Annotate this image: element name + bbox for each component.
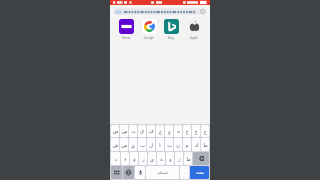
button[interactable]: ط [201, 138, 209, 151]
staticText: ظ [186, 156, 191, 162]
button[interactable]: Voice input [135, 166, 145, 179]
staticText: ش [112, 142, 119, 148]
button[interactable]: ف [147, 125, 155, 137]
button[interactable]: م [183, 138, 191, 151]
button[interactable]: و [166, 152, 174, 165]
button[interactable]: ض [111, 125, 119, 137]
staticText: و [169, 156, 172, 162]
staticText: ق [140, 128, 144, 134]
staticText: ا [159, 142, 161, 148]
button[interactable]: ا [156, 138, 164, 151]
button[interactable]: ك [192, 138, 200, 151]
button[interactable]: Address bar [113, 8, 207, 15]
button[interactable]: مسافة [146, 166, 179, 179]
staticText: ط [203, 142, 208, 148]
button[interactable]: Bing [161, 17, 181, 40]
staticText: ص [121, 128, 128, 134]
button[interactable]: غ [156, 125, 164, 137]
staticText: ك [194, 142, 199, 148]
button[interactable]: بحث [190, 166, 209, 179]
button[interactable]: ز [175, 152, 183, 165]
button[interactable]: Backspace [193, 152, 209, 165]
staticText: ل [149, 142, 153, 148]
button[interactable]: ب [138, 138, 146, 151]
staticText: ت [167, 142, 172, 148]
staticText: Yahoo [116, 36, 136, 40]
button[interactable]: ح [192, 125, 200, 137]
button[interactable]: ث [129, 125, 137, 137]
button[interactable]: ت [165, 138, 173, 151]
button[interactable]: ي [129, 138, 137, 151]
button[interactable]: ق [138, 125, 146, 137]
button[interactable]: ل [147, 138, 155, 151]
staticText: خ [185, 128, 189, 134]
staticText: ن [176, 142, 180, 148]
button[interactable]: Numbers [111, 166, 122, 179]
button[interactable]: ر [139, 152, 147, 165]
staticText: Apple [184, 36, 204, 40]
button[interactable]: خ [183, 125, 191, 137]
staticText: ؤ [133, 156, 136, 162]
staticText: مسافة [157, 170, 168, 175]
staticText: ز [178, 156, 181, 162]
staticText: ج [203, 128, 207, 134]
staticText: س [121, 142, 128, 148]
button[interactable]: ه [174, 125, 182, 137]
staticText: م [185, 142, 189, 148]
staticText: ب [140, 142, 145, 148]
button[interactable]: ذ [111, 152, 120, 165]
button[interactable]: ج [201, 125, 209, 137]
staticText: ر [142, 156, 145, 162]
staticText: ة [160, 156, 163, 162]
button[interactable]: Google [139, 17, 159, 40]
staticText: ض [112, 128, 119, 134]
staticText: ه [177, 128, 180, 134]
button[interactable]: ء [121, 152, 129, 165]
button[interactable]: س [120, 138, 128, 151]
staticText: Google [139, 36, 159, 40]
staticText: ء [124, 156, 127, 162]
button[interactable]: ة [157, 152, 165, 165]
staticText: ذ [114, 156, 117, 162]
button[interactable]: ن [174, 138, 182, 151]
button[interactable]: Apple [184, 17, 204, 40]
staticText: بحث [196, 170, 204, 175]
button[interactable]: ص [120, 125, 128, 137]
button[interactable]: ؤ [130, 152, 138, 165]
staticText: ع [168, 128, 171, 134]
button[interactable]: ى [148, 152, 156, 165]
staticText: Bing [161, 36, 181, 40]
staticText: ي [131, 142, 135, 148]
staticText: ح [194, 128, 198, 134]
button[interactable]: ظ [184, 152, 192, 165]
staticText: . [184, 169, 186, 176]
button[interactable]: ع [165, 125, 173, 137]
button[interactable]: ش [111, 138, 119, 151]
staticText: غ [159, 128, 162, 134]
staticText: ث [131, 128, 136, 134]
button[interactable]: Switch language [123, 166, 134, 179]
button[interactable]: . [180, 166, 189, 179]
staticText: ف [148, 128, 154, 134]
staticText: ى [150, 156, 154, 162]
button[interactable]: Yahoo [116, 17, 136, 40]
